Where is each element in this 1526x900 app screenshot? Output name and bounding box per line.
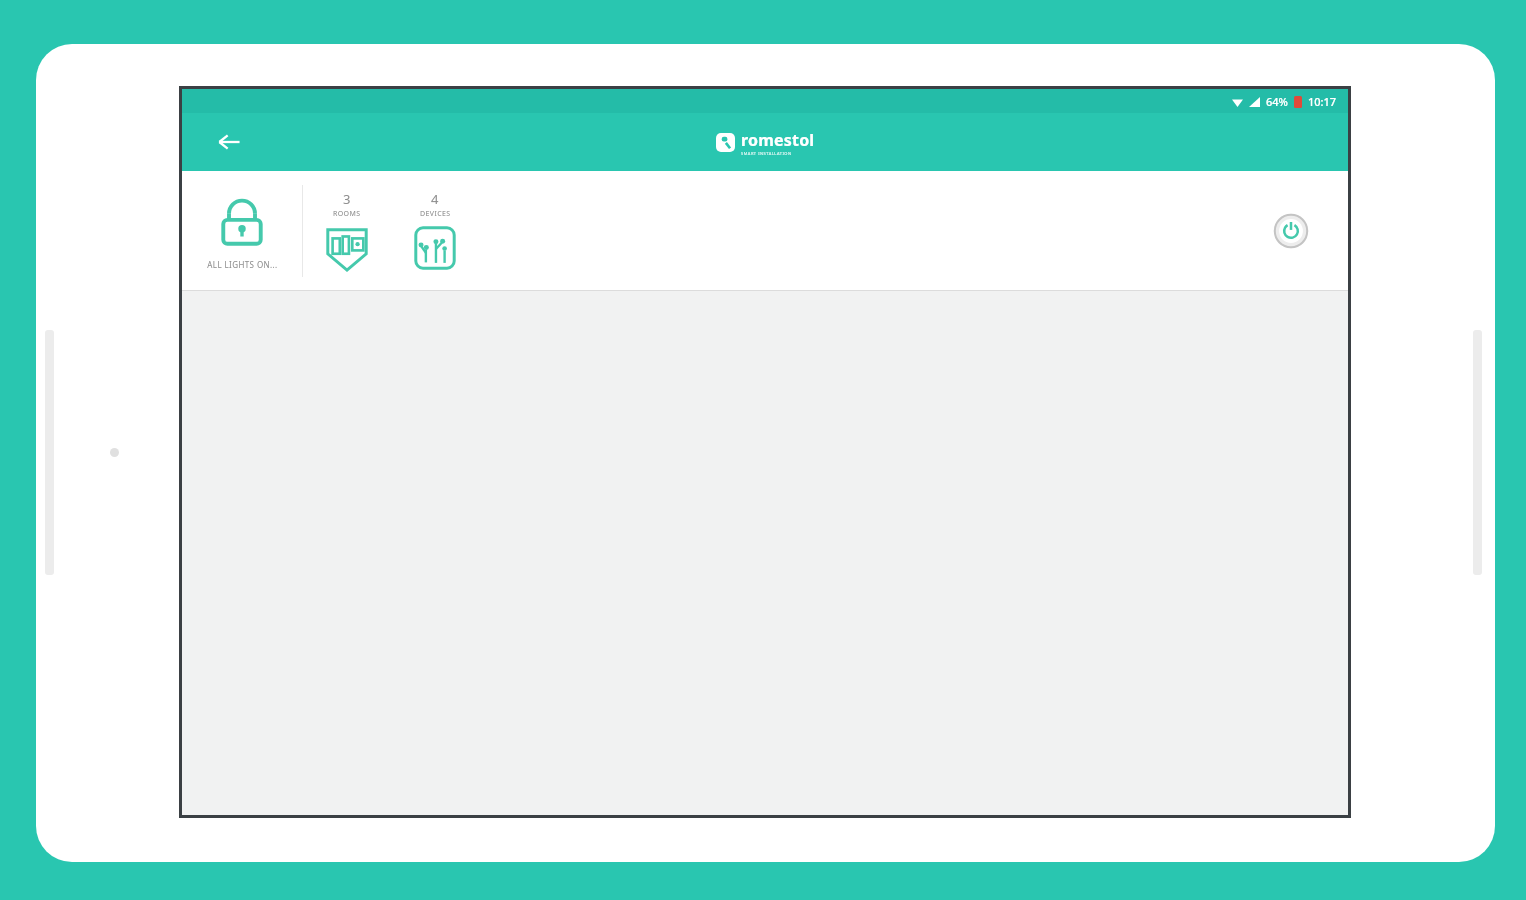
staticText: 3 [343,190,351,208]
button[interactable]: 3 [303,171,391,290]
staticText: ALL LIGHTS ON... [207,259,278,270]
button[interactable]: 4 [391,171,479,290]
button[interactable]: Power [1268,208,1314,254]
staticText: 64% [1266,94,1288,109]
staticText: DEVICES [420,209,451,219]
staticText: 4 [431,190,439,208]
button[interactable]: ALL LIGHTS ON... [182,171,302,290]
staticText: romestol [741,129,815,151]
button[interactable]: Back [208,121,250,163]
staticText: 10:17 [1308,94,1337,109]
staticText: ROOMS [333,209,361,219]
staticText: SMART INSTALLATION [741,151,792,156]
